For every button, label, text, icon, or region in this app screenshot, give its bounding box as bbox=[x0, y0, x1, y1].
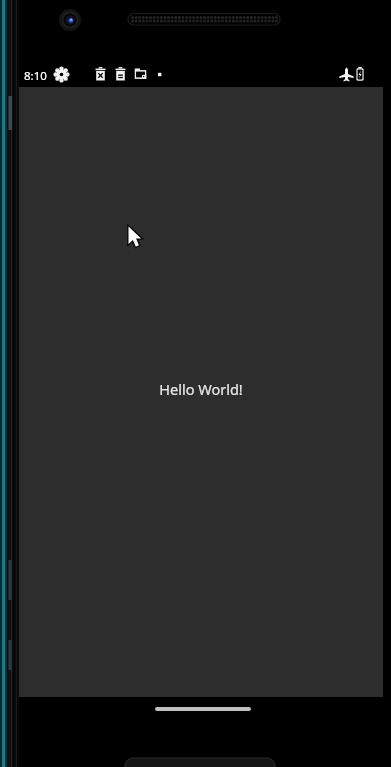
button[interactable]: Home gesture bbox=[155, 707, 251, 711]
staticText: 8:10 bbox=[24, 68, 47, 84]
staticText: Hello World! bbox=[159, 379, 243, 399]
